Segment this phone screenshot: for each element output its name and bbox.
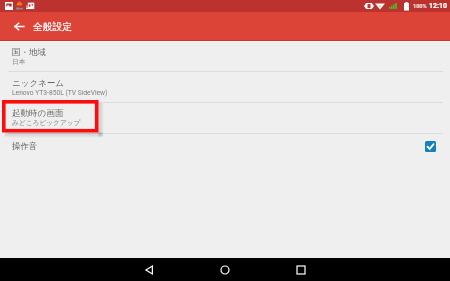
staticText: みどころピックアップ bbox=[12, 119, 81, 127]
staticText: 操作音 bbox=[12, 141, 38, 152]
staticText: ニックネーム bbox=[12, 78, 64, 89]
staticText: 国・地域 bbox=[12, 47, 46, 58]
button[interactable]: Back bbox=[5, 12, 33, 41]
button[interactable]: Back bbox=[111, 258, 187, 281]
staticText: 全般設定 bbox=[33, 21, 72, 33]
button[interactable]: 操作音 bbox=[0, 133, 450, 160]
button[interactable]: 国・地域 bbox=[0, 41, 450, 71]
staticText: 12:10 bbox=[429, 2, 448, 10]
button[interactable]: ニックネーム bbox=[0, 72, 450, 102]
staticText: 起動時の画面 bbox=[12, 108, 64, 119]
button[interactable]: Home bbox=[187, 258, 263, 281]
button[interactable]: 起動時の画面 bbox=[0, 102, 450, 132]
staticText: Lenovo YT3-850L (TV SideView) bbox=[12, 89, 108, 97]
staticText: 日本 bbox=[12, 58, 26, 66]
staticText: 100% bbox=[413, 3, 427, 9]
button[interactable]: Recent apps bbox=[263, 258, 339, 281]
